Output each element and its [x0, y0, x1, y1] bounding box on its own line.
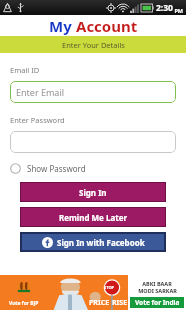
staticText: MODI SARKAR [138, 287, 177, 294]
staticText: My [49, 16, 76, 36]
staticText: Enter Password [10, 115, 65, 125]
button[interactable]: Sign In with Facebook [22, 234, 164, 250]
staticText: Sign In with Facebook [57, 237, 145, 248]
staticText: Vote for India [135, 298, 180, 307]
staticText: Enter Your Details [62, 40, 125, 50]
button[interactable]: Enter Email [10, 81, 176, 103]
button[interactable]: Remind Me Later [21, 208, 165, 226]
staticText: Enter Email [16, 86, 65, 98]
staticText: Show Password [27, 163, 86, 174]
button[interactable]: Show Password [10, 161, 86, 176]
staticText: RISE [112, 298, 128, 308]
staticText: Email ID [10, 65, 40, 75]
button[interactable]: Vote for India [130, 297, 184, 308]
staticText: STOP [104, 285, 115, 290]
staticText: Sign In [79, 187, 107, 198]
button[interactable] [10, 131, 176, 153]
staticText: PM [173, 7, 184, 14]
staticText: Vote for BJP [9, 300, 39, 307]
staticText: PRICE [89, 298, 110, 308]
button[interactable]: Advertisement [0, 275, 186, 310]
staticText: Account [76, 16, 138, 36]
button[interactable]: Sign In [21, 183, 165, 201]
staticText: ABKI BAAR [142, 280, 172, 287]
staticText: Remind Me Later [59, 212, 128, 223]
staticText: 2:30 [156, 2, 173, 14]
